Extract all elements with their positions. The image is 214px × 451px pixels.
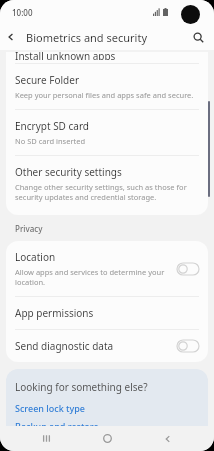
staticText: Send diagnostic data	[15, 339, 114, 353]
staticText: Device care	[15, 438, 65, 440]
staticText: Secure Folder	[15, 73, 80, 87]
staticText: Biometrics and security	[26, 30, 147, 45]
other: Toggle	[177, 340, 199, 352]
button[interactable]: Home	[92, 426, 122, 451]
staticText: Encrypt SD card	[15, 119, 90, 133]
button[interactable]: Device care	[15, 438, 65, 440]
staticText: Install unknown apps	[15, 52, 116, 60]
staticText: Keep your personal files and apps safe a…	[15, 90, 194, 100]
staticText: No SD card inserted	[15, 136, 86, 146]
other: Toggle	[177, 263, 199, 275]
staticText: 10:00	[12, 7, 33, 18]
button[interactable]: App permissions	[6, 297, 208, 329]
staticText: Looking for something else?	[15, 380, 148, 394]
button[interactable]: Secure Folder	[6, 64, 208, 109]
button[interactable]: Other security settings	[6, 156, 208, 211]
button[interactable]: Location	[6, 241, 208, 296]
button[interactable]: Screen lock type	[15, 402, 85, 414]
staticText: Location	[15, 250, 56, 264]
staticText: App permissions	[15, 306, 94, 320]
staticText: Allow apps and services to determine you…	[15, 267, 165, 287]
button[interactable]: Recents	[31, 426, 61, 451]
button[interactable]: Back	[153, 426, 183, 451]
button[interactable]: Search	[188, 27, 208, 47]
button[interactable]: Back	[0, 26, 22, 48]
staticText: Backup and restore	[15, 420, 99, 432]
staticText: Privacy	[15, 223, 43, 234]
staticText: Change other security settings, such as …	[15, 182, 187, 202]
staticText: Other security settings	[15, 165, 122, 179]
button[interactable]: Install unknown apps	[6, 52, 208, 63]
button[interactable]: Encrypt SD card	[6, 110, 208, 155]
button[interactable]: Send diagnostic data	[6, 330, 208, 362]
staticText: Screen lock type	[15, 402, 85, 414]
button[interactable]: Backup and restore	[15, 420, 99, 432]
